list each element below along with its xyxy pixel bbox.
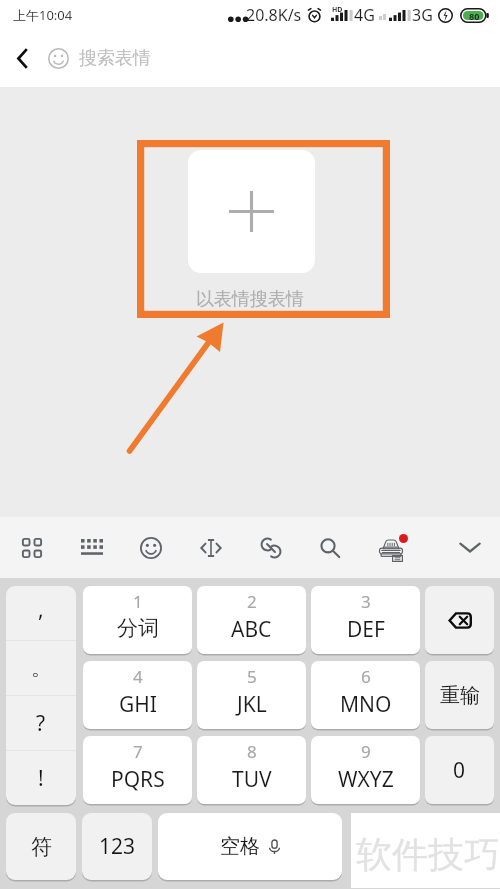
staticText: 软件技巧 [356,832,500,877]
staticText: 0 [453,756,466,785]
button[interactable]: 0 [425,736,494,804]
button[interactable]: Emoji [125,517,177,578]
staticText: 空格 [220,834,260,859]
staticText: GHI [119,690,157,719]
staticText: 重输 [440,683,480,708]
staticText: PQRS [111,765,165,794]
staticText: 分词 [117,615,159,641]
staticText: 。 [31,655,52,681]
button[interactable]: 3 [311,586,420,654]
staticText: JKL [237,690,267,719]
staticText: , [38,595,44,624]
staticText: ? [36,709,46,738]
staticText: 3 [361,590,371,613]
staticText: 上午10:04 [13,6,73,24]
button[interactable]: 2 [197,586,306,654]
staticText: 4 [133,665,143,688]
button[interactable]: Delete [425,586,494,654]
button[interactable]: 8 [197,736,306,804]
button[interactable]: 5 [197,661,306,729]
button[interactable]: 。 [6,641,76,695]
button[interactable]: Driving mode [368,517,420,578]
staticText: 123 [99,832,136,861]
button[interactable]: Back [0,30,46,87]
staticText: ABC [231,615,272,644]
staticText: 8 [247,740,257,763]
button[interactable]: ? [6,696,76,750]
staticText: 1 [133,590,143,613]
button[interactable]: Collapse keyboard [444,517,496,578]
staticText: 9 [361,740,371,763]
button[interactable]: 搜索表情 [46,30,500,87]
button[interactable]: Enter [425,813,494,880]
button[interactable]: 1 [83,586,192,654]
staticText: 80 [469,10,480,22]
staticText: 以表情搜表情 [196,288,304,311]
staticText: WXYZ [338,765,394,794]
button[interactable]: ! [6,751,76,805]
button[interactable]: 4 [83,661,192,729]
button[interactable]: 符 [6,813,76,880]
button[interactable]: , [6,586,76,640]
button[interactable]: Clipboard [245,517,297,578]
staticText: 6 [361,665,371,688]
button[interactable]: 空格 [158,813,342,880]
button[interactable]: Move cursor [185,517,237,578]
staticText: HD [332,5,343,15]
button[interactable]: Apps [6,517,58,578]
staticText: 搜索表情 [79,47,151,70]
button[interactable]: 重输 [425,661,494,729]
button[interactable]: 7 [83,736,192,804]
button[interactable]: Add emoji [188,150,315,273]
button[interactable]: 9 [311,736,420,804]
staticText: 2 [247,590,257,613]
button[interactable]: 123 [82,813,152,880]
staticText: 20.8K/s [246,4,302,26]
staticText: ! [38,764,44,793]
staticText: 符 [31,834,52,860]
button[interactable]: Keyboard [66,517,118,578]
staticText: MNO [340,690,392,719]
staticText: 7 [133,740,143,763]
button[interactable]: 6 [311,661,420,729]
staticText: DEF [347,615,385,644]
staticText: 3G [412,4,433,26]
staticText: 5 [247,665,257,688]
button[interactable]: Search [304,517,356,578]
staticText: 4G [354,4,375,26]
staticText: TUV [232,765,272,794]
